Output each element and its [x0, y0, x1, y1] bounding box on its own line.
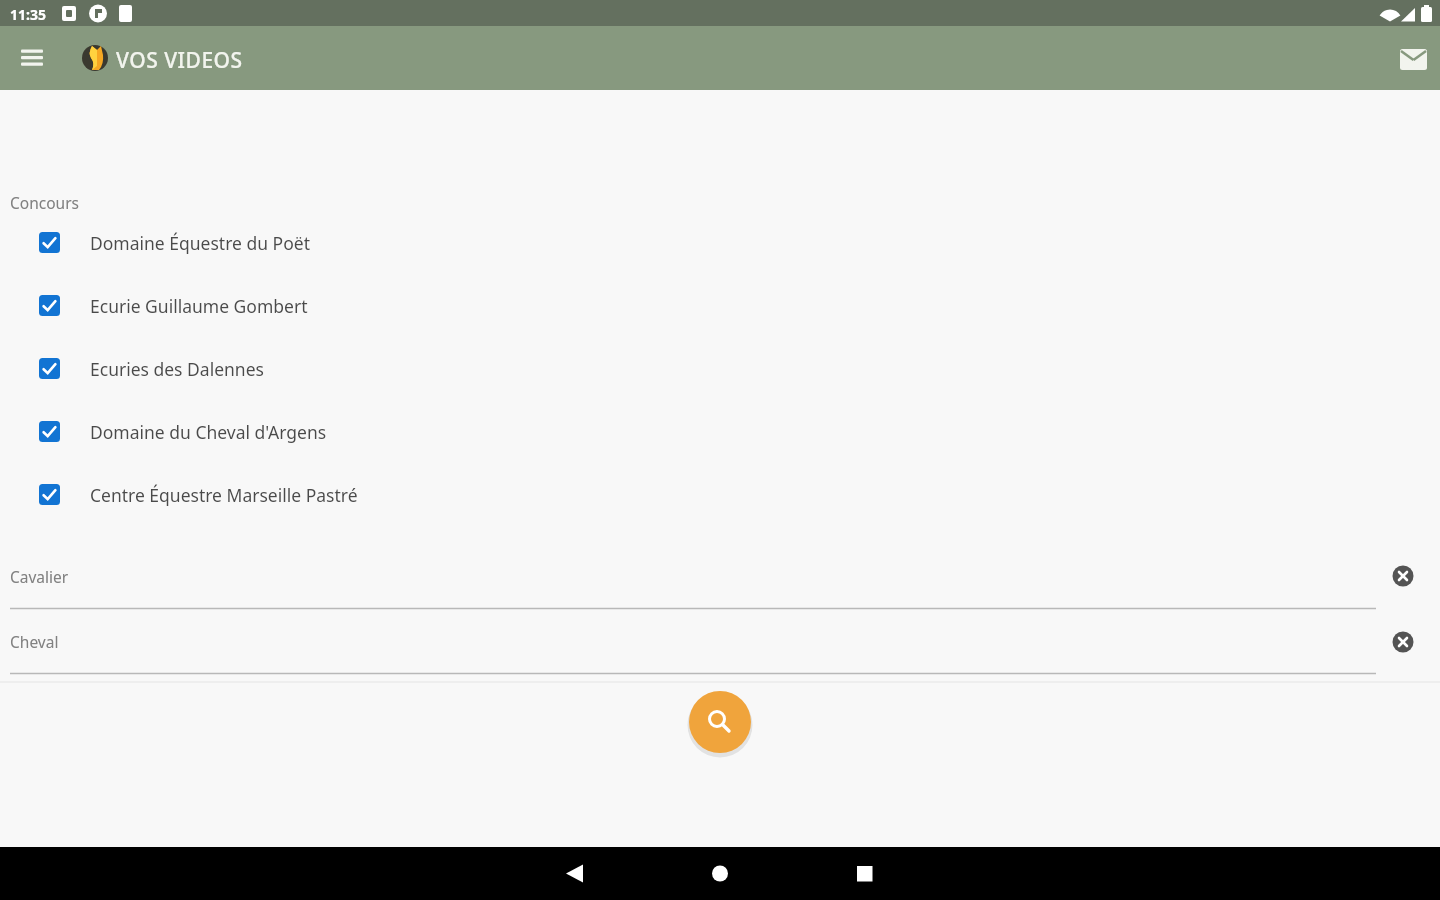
- staticText: Ecuries des Dalennes: [90, 357, 264, 381]
- staticText: Centre Équestre Marseille Pastré: [90, 483, 358, 507]
- staticText: Domaine Équestre du Poët: [90, 231, 310, 255]
- staticText: VOS VIDEOS: [116, 46, 243, 75]
- staticText: Ecurie Guillaume Gombert: [90, 294, 308, 318]
- staticText: Domaine du Cheval d'Argens: [90, 420, 327, 444]
- staticText: Cheval: [10, 631, 59, 652]
- staticText: Cavalier: [10, 566, 69, 587]
- staticText: Concours: [10, 192, 79, 213]
- staticText: 11:35: [10, 5, 46, 24]
